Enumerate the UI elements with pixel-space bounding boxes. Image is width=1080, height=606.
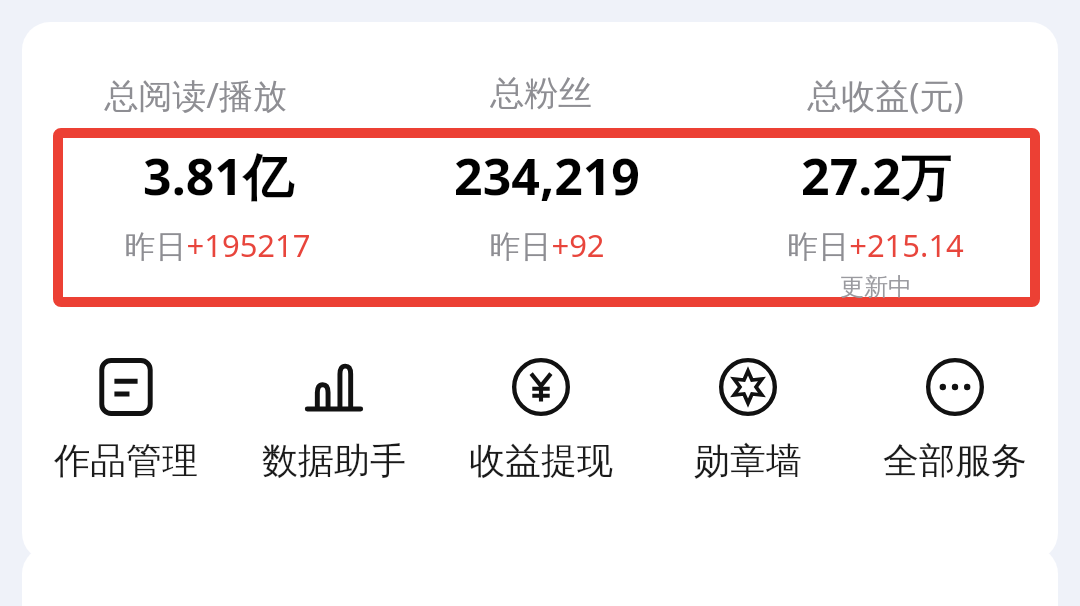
staticText: 数据助手 [262, 438, 406, 483]
staticText: 勋章墙 [694, 438, 802, 483]
other: 全部服务 [926, 358, 984, 416]
other: 收益提现 [512, 358, 570, 416]
staticText: 3.81亿 [143, 142, 293, 210]
staticText: 27.2万 [801, 142, 951, 210]
staticText: 全部服务 [883, 438, 1027, 483]
button[interactable]: 234,219 [382, 142, 711, 266]
staticText: 总粉丝 [490, 72, 592, 115]
staticText: 更新中 [840, 272, 912, 302]
button[interactable]: 27.2万 [711, 142, 1040, 302]
button[interactable]: 勋章墙 [644, 354, 851, 487]
other: 勋章墙 [719, 358, 777, 416]
staticText: 昨日+215.14 [787, 224, 964, 266]
button[interactable]: 作品管理 [22, 354, 230, 487]
staticText: 234,219 [454, 142, 640, 210]
button[interactable]: 3.81亿 [53, 142, 382, 266]
button[interactable]: 数据助手 [230, 354, 437, 487]
staticText: 收益提现 [469, 438, 613, 483]
staticText: 总阅读/播放 [104, 72, 287, 118]
other: 数据助手 [305, 358, 363, 416]
other: 作品管理 [97, 358, 155, 416]
staticText: 昨日+195217 [124, 224, 311, 266]
staticText: 作品管理 [54, 438, 198, 483]
staticText: 昨日+92 [489, 224, 605, 266]
staticText: 总收益(元) [807, 72, 964, 118]
button[interactable]: 收益提现 [437, 354, 644, 487]
button[interactable]: 全部服务 [851, 354, 1058, 487]
